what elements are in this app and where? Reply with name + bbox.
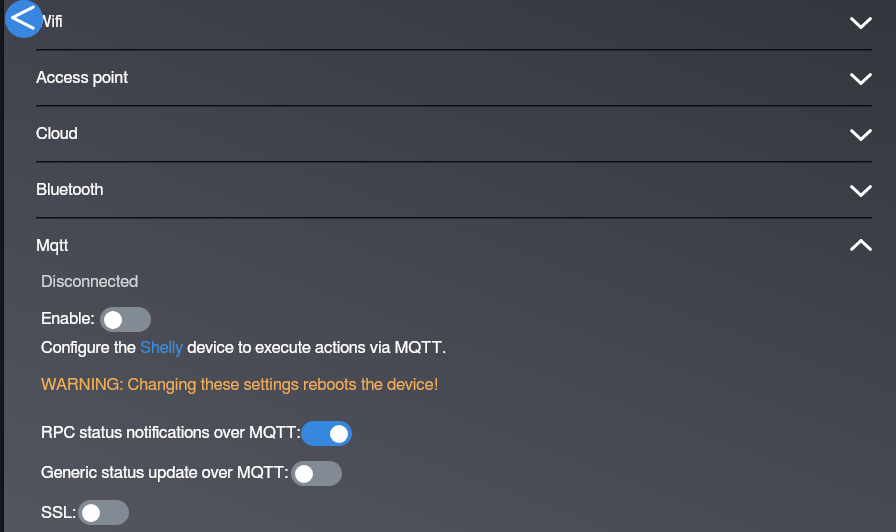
staticText: RPC status notifications over MQTT:	[41, 419, 301, 443]
button[interactable]: Enable	[100, 307, 151, 332]
button[interactable]	[0, 106, 896, 162]
staticText: Disconnected	[41, 268, 139, 292]
staticText: Wifi	[36, 8, 63, 32]
button[interactable]: SSL	[78, 500, 129, 525]
staticText: Cloud	[36, 120, 78, 144]
staticText: Access point	[36, 64, 128, 88]
staticText: Generic status update over MQTT:	[41, 459, 289, 483]
button[interactable]	[0, 162, 896, 218]
button[interactable]	[0, 218, 896, 274]
button[interactable]	[0, 0, 896, 50]
button[interactable]: Back	[5, 0, 43, 38]
button[interactable]: RPC status notifications over MQTT	[301, 421, 352, 446]
staticText: WARNING: Changing these settings reboots…	[41, 371, 440, 395]
staticText: Mqtt	[36, 232, 69, 256]
staticText: Bluetooth	[36, 176, 104, 200]
button[interactable]: Generic status update over MQTT	[291, 461, 342, 486]
staticText: Enable:	[41, 305, 95, 329]
staticText: SSL:	[41, 499, 77, 523]
staticText: Configure the Shelly device to execute a…	[41, 334, 447, 358]
button[interactable]	[0, 50, 896, 106]
